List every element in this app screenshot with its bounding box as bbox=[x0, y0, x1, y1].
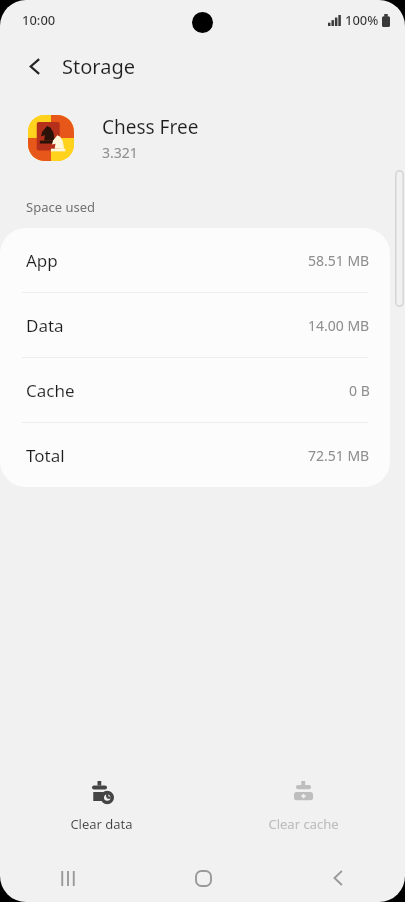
staticText: Clear cache bbox=[268, 815, 339, 833]
staticText: Chess Free bbox=[102, 114, 199, 140]
staticText: 14.00 MB bbox=[308, 316, 370, 335]
staticText: Space used bbox=[26, 198, 95, 216]
staticText: Data bbox=[26, 314, 64, 337]
button[interactable]: Data bbox=[0, 293, 390, 357]
button[interactable]: Clear data bbox=[46, 775, 157, 839]
button[interactable]: Back bbox=[14, 46, 54, 86]
staticText: Cache bbox=[26, 379, 75, 402]
staticText: Storage bbox=[62, 53, 135, 80]
staticText: 10:00 bbox=[22, 11, 56, 29]
staticText: App bbox=[26, 249, 58, 272]
button[interactable]: Cache bbox=[0, 358, 390, 422]
staticText: Total bbox=[26, 444, 65, 467]
button[interactable]: Back bbox=[316, 856, 360, 900]
staticText: 72.51 MB bbox=[308, 446, 370, 465]
staticText: 3.321 bbox=[102, 143, 138, 162]
button[interactable]: Home bbox=[181, 856, 225, 900]
staticText: 0 B bbox=[349, 381, 370, 400]
button[interactable]: Total bbox=[0, 423, 390, 487]
staticText: 58.51 MB bbox=[308, 251, 370, 270]
button[interactable]: Clear cache bbox=[244, 775, 363, 839]
staticText: Clear data bbox=[70, 815, 133, 833]
staticText: 100% bbox=[345, 11, 379, 29]
button[interactable]: Recent apps bbox=[46, 856, 90, 900]
button[interactable]: App bbox=[0, 228, 390, 292]
